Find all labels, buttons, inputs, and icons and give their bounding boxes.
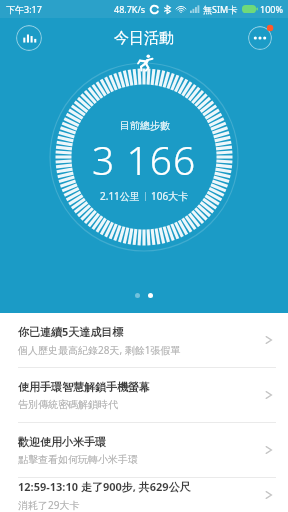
staticText: 無SIM卡 [203,3,238,15]
staticText: 點擊查看如何玩轉小米手環 [18,453,138,466]
staticText: 消耗了29大卡 [18,498,80,512]
staticText: 3 166 [92,133,197,186]
staticText: 歡迎使用小米手環 [18,435,106,449]
staticText: 12:59-13:10 走了900步, 共629公尺 [18,479,191,494]
staticText: 個人歷史最高紀錄28天, 剩餘1張假單 [18,343,181,357]
staticText: 告別傳統密碼解鎖時代 [18,398,118,411]
staticText: 100% [260,3,283,15]
button[interactable]: 使用手環智慧解鎖手機螢幕 [0,368,288,423]
staticText: 2.11公里 [100,189,140,203]
staticText: 106大卡 [151,189,189,203]
button[interactable]: 12:59-13:10 走了900步, 共629公尺 [0,478,288,512]
staticText: 你已連續5天達成目標 [18,324,124,339]
staticText: 48.7K/s [114,3,146,15]
button[interactable]: 歡迎使用小米手環 [0,423,288,478]
button[interactable]: Statistics [16,25,42,51]
staticText: 使用手環智慧解鎖手機螢幕 [18,380,150,394]
staticText: 目前總步數 [120,119,170,132]
staticText: 今日活動 [114,29,174,48]
button[interactable]: 你已連續5天達成目標 [0,313,288,368]
button[interactable]: More options [248,26,272,50]
staticText: 下午3:17 [6,3,42,15]
